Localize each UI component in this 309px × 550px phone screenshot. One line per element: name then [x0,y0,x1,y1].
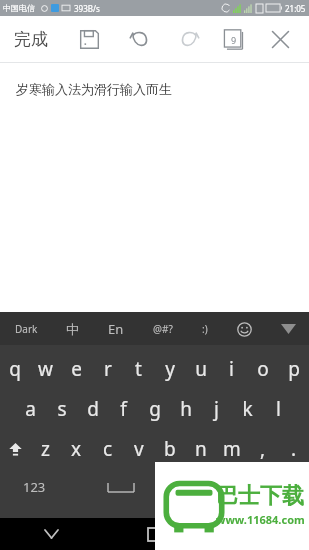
staticText: k [242,396,253,422]
button[interactable]: b [154,429,185,469]
button[interactable]: Back [0,518,103,550]
staticText: o [257,356,269,382]
button[interactable]: , [247,429,278,469]
button[interactable]: y [154,349,185,389]
staticText: c [103,436,113,462]
button[interactable]: 123 [0,469,68,505]
staticText: e [71,356,82,382]
button[interactable]: c [92,429,123,469]
staticText: q [9,356,21,382]
button[interactable]: f [108,389,139,429]
button[interactable]: :) [197,318,213,340]
button[interactable]: Backspace [241,469,309,505]
staticText: f [120,396,127,422]
staticText: x [71,436,82,462]
button[interactable]: v [123,429,154,469]
button[interactable]: Notes list [217,22,251,56]
button[interactable]: l [263,389,294,429]
button[interactable]: Space [68,469,173,505]
button[interactable]: Save [72,22,106,56]
button[interactable]: t [123,349,154,389]
staticText: . [291,436,297,462]
button[interactable]: En [103,316,129,342]
button[interactable]: Undo [122,22,156,56]
button[interactable]: h [170,389,201,429]
staticText: @#? [153,322,173,336]
staticText: l [276,396,281,422]
staticText: d [87,396,99,422]
button[interactable]: . [278,429,309,469]
button[interactable]: Recents [206,518,309,550]
button[interactable]: Shift [0,429,30,469]
staticText: 123 [23,478,46,496]
button[interactable]: j [201,389,232,429]
button[interactable]: Redo [172,22,206,56]
button[interactable]: Emoji [232,317,256,341]
staticText: z [41,436,50,462]
button[interactable]: 中 [61,317,84,341]
button[interactable]: 完成 [0,21,58,58]
staticText: p [288,356,300,382]
button[interactable]: Enter [173,469,241,505]
button[interactable]: a [15,389,46,429]
staticText: h [180,396,192,422]
button[interactable]: Close [263,22,297,56]
staticText: 中国电信 [3,3,35,13]
staticText: s [57,396,67,422]
button[interactable]: m [216,429,247,469]
staticText: 完成 [14,29,48,50]
staticText: w [38,356,53,382]
button[interactable]: z [30,429,61,469]
button[interactable]: q [0,349,30,389]
staticText: :) [202,322,208,336]
staticText: 巴士下载 [216,482,304,510]
button[interactable]: Home [103,518,206,550]
staticText: r [104,356,112,382]
staticText: g [149,396,161,422]
button[interactable]: @#? [148,318,178,340]
button[interactable]: x [61,429,92,469]
staticText: y [165,356,175,382]
staticText: 21:05 [285,3,306,14]
staticText: i [229,356,234,382]
button[interactable]: Dark [10,318,43,340]
staticText: b [164,436,176,462]
staticText: n [195,436,207,462]
button[interactable]: w [30,349,61,389]
button[interactable]: e [61,349,92,389]
staticText: a [25,396,36,422]
button[interactable]: g [139,389,170,429]
staticText: 岁寒输入法为滑行输入而生 [16,81,172,97]
staticText: m [223,436,241,462]
button[interactable]: k [232,389,263,429]
button[interactable]: o [247,349,278,389]
staticText: , [260,436,266,462]
button[interactable]: p [278,349,309,389]
staticText: En [108,320,124,338]
button[interactable]: d [77,389,108,429]
staticText: 中 [66,321,79,337]
staticText: t [135,356,142,382]
staticText: www.11684.com [216,512,305,527]
staticText: v [134,436,144,462]
button[interactable]: s [46,389,77,429]
staticText: 393B/s [74,3,100,14]
staticText: j [214,396,219,422]
staticText: Dark [15,322,38,336]
staticText: 9 [231,34,237,46]
button[interactable]: u [185,349,216,389]
button[interactable]: r [92,349,123,389]
button[interactable]: Hide keyboard [275,316,301,342]
button[interactable]: i [216,349,247,389]
staticText: u [195,356,207,382]
button[interactable]: n [185,429,216,469]
